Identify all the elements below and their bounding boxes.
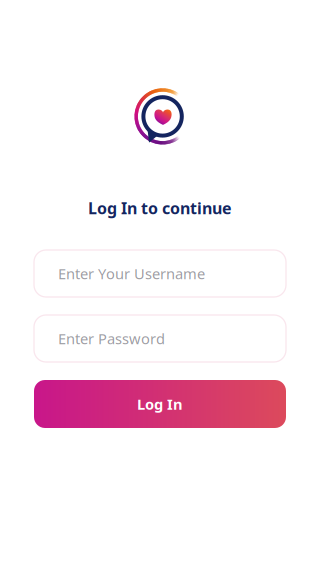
staticText: Log In [137,394,183,414]
staticText: Enter Your Username [58,264,205,283]
button[interactable]: Log In [34,380,286,428]
button[interactable]: Enter Your Username [34,250,286,297]
staticText: Log In to continue [88,197,232,219]
staticText: Enter Password [58,329,165,348]
button[interactable]: Enter Password [34,315,286,362]
